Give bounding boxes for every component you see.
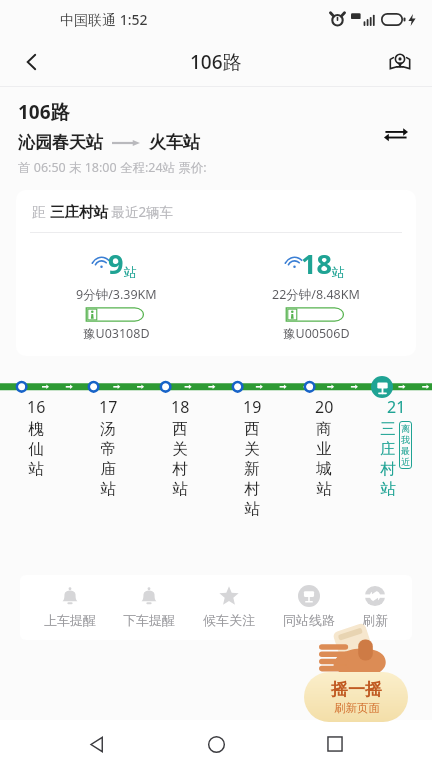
button[interactable]: 最近任务 (313, 722, 357, 766)
staticText: 仙 (28, 439, 44, 459)
staticText: 站 (172, 479, 188, 499)
staticText: 18 (171, 396, 190, 418)
staticText: 最 (401, 445, 410, 456)
button[interactable]: 地图 (378, 40, 422, 84)
button[interactable]: 切换方向 (374, 113, 418, 157)
staticText: 站 (316, 479, 332, 499)
button[interactable]: 19 西关新村站 (216, 396, 288, 519)
staticText: 下车提醒 (123, 612, 175, 628)
staticText: 站 (380, 479, 396, 499)
staticText: 中国联通 1:52 (60, 10, 148, 29)
staticText: 16 (27, 396, 46, 418)
button[interactable]: 返回 (75, 722, 119, 766)
button[interactable]: 返回 (10, 40, 54, 84)
staticText: 关 (172, 439, 188, 459)
staticText: 豫U03108D (83, 325, 150, 342)
staticText: 候车关注 (203, 612, 255, 628)
staticText: 距 (32, 203, 50, 221)
staticText: 庄 (380, 439, 396, 459)
staticText: 火车站 (149, 132, 200, 153)
staticText: 关 (244, 439, 260, 459)
staticText: 村 (244, 479, 260, 499)
button[interactable]: 刷新 (358, 585, 392, 628)
staticText: 18 (301, 245, 332, 282)
staticText: 业 (316, 439, 332, 459)
button[interactable]: 21 三庄村站 (360, 396, 432, 499)
staticText: 19 (243, 396, 262, 418)
staticText: 站 (100, 479, 116, 499)
staticText: 上车提醒 (44, 612, 96, 628)
staticText: 城 (316, 459, 332, 479)
staticText: 沁园春天站 (18, 132, 103, 153)
staticText: 我 (401, 434, 410, 445)
button[interactable]: 三庄村站 (371, 376, 393, 398)
staticText: 22分钟/8.48KM (272, 286, 360, 303)
staticText: 新 (244, 459, 260, 479)
staticText: 西 (172, 419, 188, 439)
button[interactable]: 同站线路 (279, 585, 339, 628)
staticText: 摇一摇 (331, 679, 382, 700)
staticText: 站 (124, 264, 137, 280)
button[interactable]: 候车关注 (199, 585, 259, 628)
staticText: 20 (315, 396, 334, 418)
staticText: 豫U00506D (283, 325, 350, 342)
button[interactable]: 上车提醒 (40, 585, 100, 628)
button[interactable]: 16 槐仙站 (0, 396, 72, 479)
staticText: 9分钟/3.39KM (76, 286, 157, 303)
staticText: 西 (244, 419, 260, 439)
staticText: 站 (244, 499, 260, 519)
staticText: 汤 (100, 419, 116, 439)
staticText: 106路 (190, 49, 242, 75)
button[interactable]: 17 汤帝庙站 (72, 396, 144, 499)
staticText: 最近2辆车 (108, 203, 174, 221)
staticText: 刷新 (362, 612, 388, 628)
staticText: 21 (387, 396, 406, 418)
staticText: 商 (316, 419, 332, 439)
staticText: 刷新页面 (334, 701, 380, 715)
staticText: 站 (332, 264, 345, 280)
staticText: 近 (401, 456, 410, 467)
staticText: 三庄村站 (50, 203, 108, 221)
staticText: 106路 (18, 99, 70, 125)
staticText: 9 (108, 245, 124, 282)
staticText: 庙 (100, 459, 116, 479)
button[interactable]: 20 商业城站 (288, 396, 360, 499)
button[interactable]: 摇一摇刷新页面 (300, 626, 412, 722)
staticText: 首 06:50 末 18:00 全程:24站 票价: (18, 159, 207, 176)
staticText: 离 (401, 423, 410, 434)
staticText: 村 (380, 459, 396, 479)
staticText: 帝 (100, 439, 116, 459)
staticText: 三 (380, 419, 396, 439)
staticText: 站 (28, 459, 44, 479)
staticText: 17 (99, 396, 118, 418)
button[interactable]: 18 西关村站 (144, 396, 216, 499)
staticText: 村 (172, 459, 188, 479)
button[interactable]: 主屏幕 (194, 722, 238, 766)
staticText: 槐 (28, 419, 44, 439)
staticText: 同站线路 (283, 612, 335, 628)
button[interactable]: 下车提醒 (119, 585, 179, 628)
button[interactable]: 距 (16, 190, 416, 356)
